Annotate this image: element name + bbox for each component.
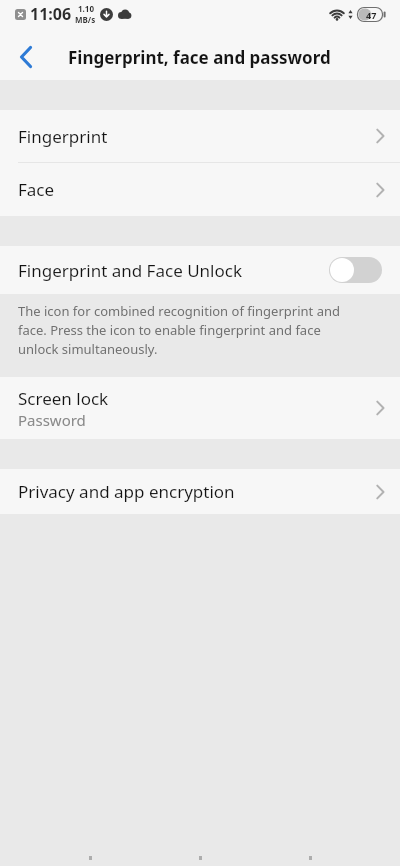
button[interactable] [329,257,382,283]
staticText: Privacy and app encryption [18,480,235,503]
button[interactable]: Privacy and app encryption [0,469,400,514]
staticText: Fingerprint, face and password [68,46,331,69]
button[interactable]: Fingerprint [0,110,400,162]
button[interactable]: Face [0,163,400,216]
button[interactable]: Screen lock [0,377,400,439]
staticText: Password [18,410,86,430]
staticText: The icon for combined recognition of fin… [18,302,340,358]
staticText: 47 [366,9,377,21]
button[interactable]: Fingerprint and Face Unlock [0,246,400,294]
staticText: 1.10 [78,3,94,14]
staticText: Face [18,178,55,201]
staticText: Fingerprint and Face Unlock [18,259,242,282]
staticText: MB/s [75,14,96,25]
staticText: Fingerprint [18,125,108,148]
button[interactable] [6,35,48,79]
staticText: 11:06 [30,3,72,25]
staticText: Screen lock [18,387,109,410]
